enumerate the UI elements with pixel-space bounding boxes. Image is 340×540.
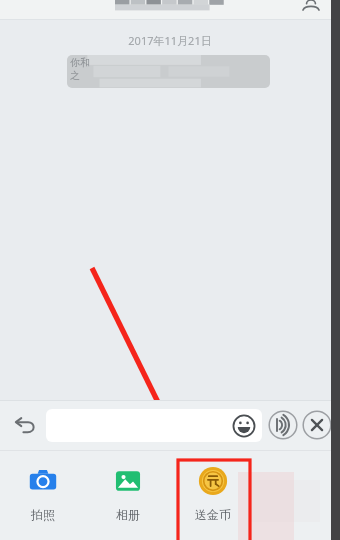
staticText: 你和 — [70, 56, 90, 69]
button[interactable]: Emoji — [46, 409, 262, 442]
staticText: 相册 — [116, 507, 140, 522]
button[interactable]: 你和 — [67, 55, 270, 88]
button[interactable]: Contact info — [300, 0, 322, 14]
button[interactable]: 拍照 — [0, 450, 85, 522]
staticText: 2017年11月21日 — [128, 33, 212, 48]
button[interactable]: Undo — [8, 408, 42, 442]
button[interactable]: Voice message — [268, 410, 298, 440]
button[interactable]: Close — [302, 410, 332, 440]
staticText: 之 — [70, 69, 80, 82]
button[interactable]: Emoji — [232, 414, 256, 438]
button[interactable]: 相册 — [85, 450, 170, 522]
staticText: 送金币 — [195, 507, 231, 522]
staticText: 拍照 — [31, 507, 55, 522]
button[interactable]: 送金币 — [170, 450, 255, 522]
